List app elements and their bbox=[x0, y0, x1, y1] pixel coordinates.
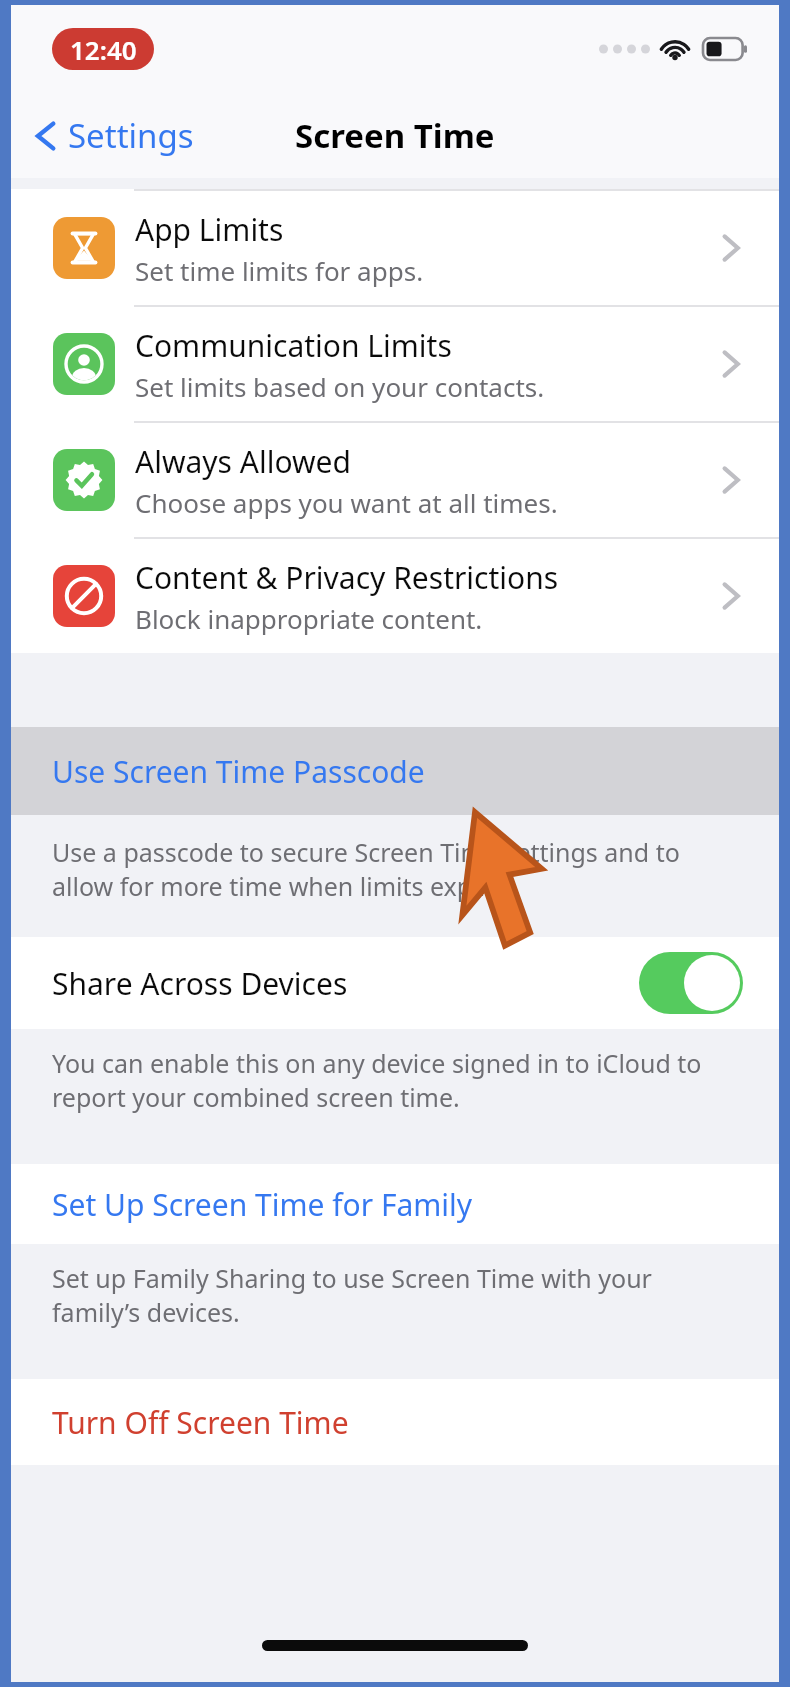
staticText: Communication Limits bbox=[135, 325, 452, 366]
staticText: Choose apps you want at all times. bbox=[135, 485, 558, 520]
staticText: Turn Off Screen Time bbox=[52, 1402, 349, 1443]
button[interactable]: Share Across Devices bbox=[11, 937, 779, 1029]
staticText: Content & Privacy Restrictions bbox=[135, 557, 559, 598]
staticText: Set Up Screen Time for Family bbox=[52, 1184, 473, 1225]
button[interactable]: Use Screen Time Passcode bbox=[11, 727, 779, 815]
button[interactable]: Always Allowed bbox=[11, 423, 779, 537]
staticText: App Limits bbox=[135, 209, 284, 250]
staticText: You can enable this on any device signed… bbox=[52, 1046, 731, 1114]
staticText: Set time limits for apps. bbox=[135, 253, 424, 288]
staticText: Use Screen Time Passcode bbox=[52, 751, 425, 792]
staticText: Screen Time bbox=[295, 113, 495, 158]
button[interactable]: Share Across Devices toggle, on bbox=[639, 952, 743, 1014]
button[interactable]: App Limits bbox=[11, 191, 779, 305]
staticText: Settings bbox=[68, 113, 194, 158]
staticText: Set up Family Sharing to use Screen Time… bbox=[52, 1261, 731, 1329]
staticText: Block inappropriate content. bbox=[135, 601, 483, 636]
button[interactable]: Content & Privacy Restrictions bbox=[11, 539, 779, 653]
button[interactable]: Settings bbox=[33, 113, 194, 158]
button[interactable]: Set Up Screen Time for Family bbox=[11, 1164, 779, 1244]
button[interactable]: Communication Limits bbox=[11, 307, 779, 421]
staticText: 12:40 bbox=[70, 32, 137, 67]
button[interactable]: Turn Off Screen Time bbox=[11, 1379, 779, 1465]
staticText: Share Across Devices bbox=[52, 963, 348, 1004]
staticText: Always Allowed bbox=[135, 441, 351, 482]
staticText: Use a passcode to secure Screen Time set… bbox=[52, 835, 731, 903]
staticText: Set limits based on your contacts. bbox=[135, 369, 545, 404]
